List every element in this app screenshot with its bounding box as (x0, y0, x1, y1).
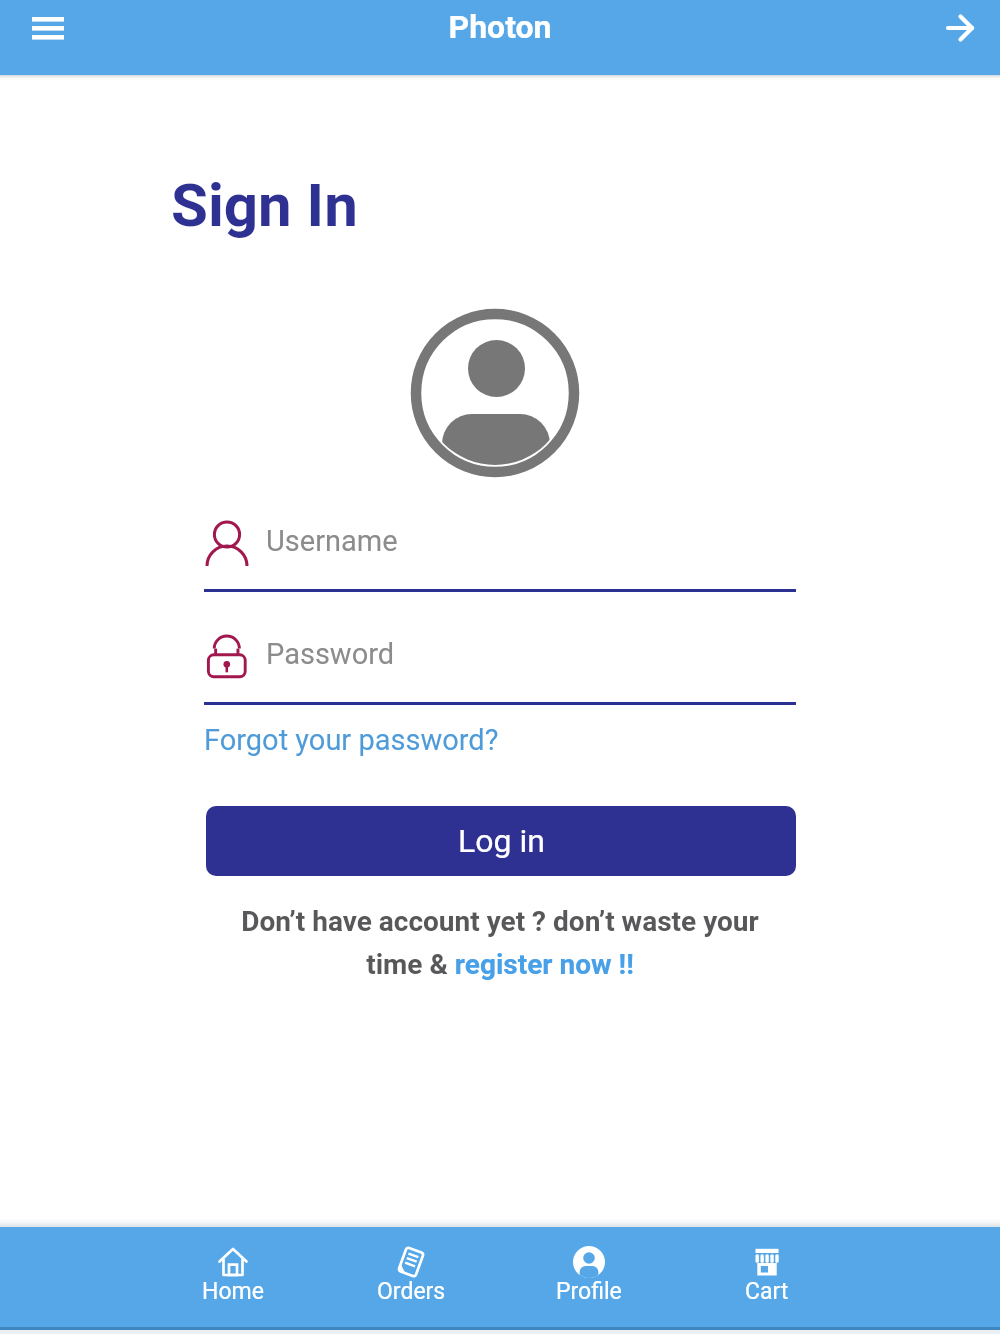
staticText: Home (202, 1278, 264, 1305)
button[interactable]: Don’t have account yet ? don’t waste you… (0, 905, 1000, 981)
button[interactable]: Cart (678, 1246, 856, 1305)
staticText: Username (266, 524, 398, 558)
button[interactable]: Home (144, 1246, 322, 1305)
staticText: Password (266, 637, 395, 671)
button[interactable] (22, 8, 74, 50)
staticText: Profile (556, 1278, 622, 1305)
button[interactable]: Profile (500, 1246, 678, 1305)
button[interactable]: Forgot your password? (204, 723, 499, 757)
staticText: Sign In (171, 170, 358, 240)
staticText: Orders (377, 1278, 446, 1305)
button[interactable] (936, 3, 986, 53)
button[interactable]: Log in (206, 806, 796, 876)
button[interactable]: Username (204, 512, 796, 593)
staticText: Photon (0, 8, 1000, 46)
button[interactable]: Orders (322, 1246, 500, 1305)
staticText: Cart (745, 1278, 789, 1305)
staticText: Log in (458, 822, 545, 860)
button[interactable]: Password (204, 625, 796, 705)
